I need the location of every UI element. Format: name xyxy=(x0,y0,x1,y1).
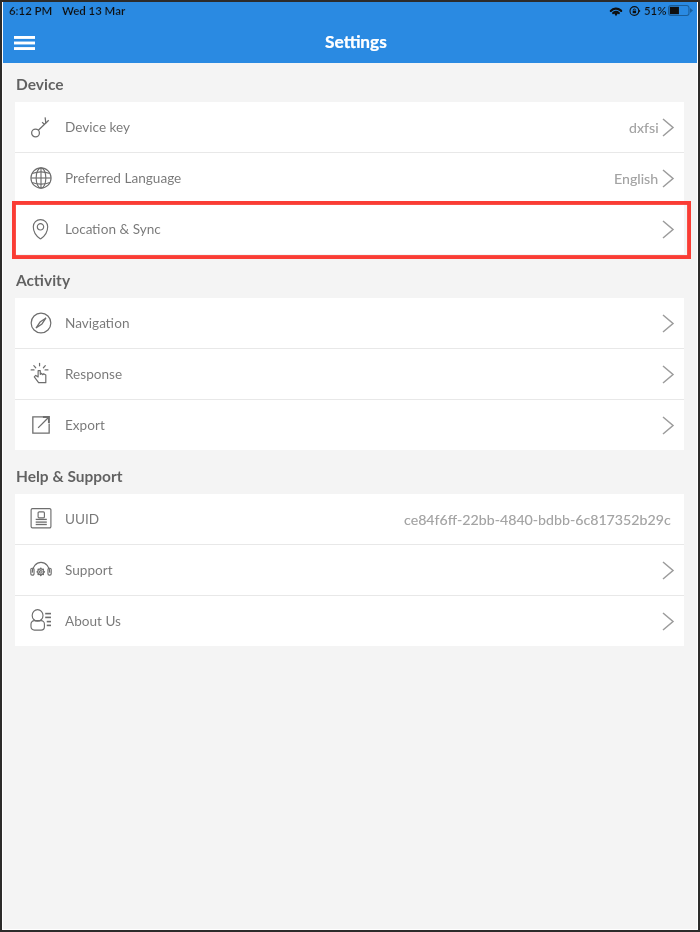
staticText: Settings xyxy=(325,31,387,52)
button[interactable]: Open navigation menu xyxy=(6,25,42,61)
staticText: Device xyxy=(16,75,64,94)
staticText: Activity xyxy=(16,271,71,290)
button[interactable]: About Us xyxy=(15,596,684,646)
staticText: 51% xyxy=(644,4,667,18)
staticText: Support xyxy=(65,562,113,578)
staticText: Navigation xyxy=(65,315,130,331)
staticText: About Us xyxy=(65,613,121,629)
staticText: ce84f6ff-22bb-4840-bdbb-6c817352b29c xyxy=(404,511,671,528)
staticText: Response xyxy=(65,366,123,382)
button[interactable]: Device key xyxy=(15,102,684,152)
staticText: Preferred Language xyxy=(65,170,182,186)
staticText: Location & Sync xyxy=(65,221,161,237)
staticText: English xyxy=(614,170,659,187)
button[interactable]: Support xyxy=(15,545,684,595)
button[interactable]: Response xyxy=(15,349,684,399)
button[interactable]: Export xyxy=(15,400,684,450)
button[interactable]: Navigation xyxy=(15,298,684,348)
staticText: Help & Support xyxy=(16,467,123,486)
staticText: 6:12 PM xyxy=(9,4,53,18)
staticText: Wed 13 Mar xyxy=(62,4,126,18)
button[interactable]: Location & Sync xyxy=(15,204,684,254)
staticText: Device key xyxy=(65,119,131,135)
staticText: Export xyxy=(65,417,105,433)
button[interactable]: UUID xyxy=(15,494,684,544)
staticText: UUID xyxy=(65,511,100,527)
staticText: dxfsi xyxy=(629,119,659,136)
button[interactable]: Preferred Language xyxy=(15,153,684,203)
